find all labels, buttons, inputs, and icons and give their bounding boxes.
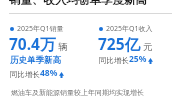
staticText: 同比增长 — [99, 56, 129, 65]
button[interactable]: 销量、收入均创单季度新高 — [0, 0, 180, 12]
staticText: 同比增长 — [10, 70, 40, 79]
staticText: 燃油车及新能源销量较上年同期均实现增长 — [11, 88, 144, 97]
staticText: 2025年Q1收入 — [106, 24, 153, 34]
staticText: 725亿 — [98, 33, 141, 54]
staticText: 元 — [143, 41, 153, 53]
staticText: 销量、收入均创单季度新高 — [9, 0, 147, 5]
staticText: 辆 — [58, 41, 68, 53]
staticText: 25% — [129, 53, 147, 65]
staticText: 2025年Q1销量 — [17, 24, 64, 34]
staticText: 70.4万 — [9, 33, 56, 54]
staticText: 历史单季新高 — [10, 55, 61, 66]
staticText: 48% — [40, 67, 58, 79]
